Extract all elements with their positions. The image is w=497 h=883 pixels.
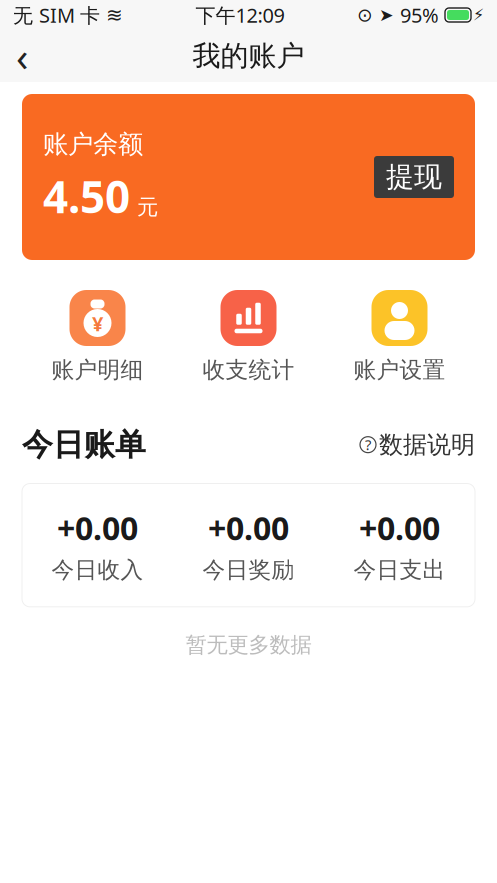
button[interactable]: 提现: [374, 156, 454, 198]
staticText: ≋: [106, 4, 123, 26]
staticText: 账户明细: [51, 356, 143, 384]
staticText: 暂无更多数据: [185, 632, 311, 658]
staticText: ⊙: [357, 4, 373, 26]
staticText: 账户余额: [43, 129, 143, 160]
staticText: 提现: [386, 160, 442, 194]
staticText: +0.00: [57, 506, 138, 549]
button[interactable]: ?: [360, 430, 475, 459]
button[interactable]: 账户设置: [324, 290, 475, 384]
button[interactable]: 返回: [0, 31, 44, 81]
button[interactable]: 收支统计: [173, 290, 324, 384]
staticText: 95%: [400, 2, 439, 28]
staticText: +0.00: [359, 506, 440, 549]
staticText: 今日支出: [353, 556, 445, 584]
staticText: 我的账户: [192, 39, 304, 73]
staticText: ⚡︎: [473, 6, 484, 24]
staticText: +0.00: [208, 506, 289, 549]
staticText: ¥: [92, 310, 103, 337]
staticText: 元: [137, 194, 158, 220]
staticText: 下午12:09: [195, 2, 284, 28]
button[interactable]: ¥: [22, 290, 173, 384]
staticText: ➤: [379, 5, 394, 25]
staticText: 无 SIM 卡: [13, 2, 100, 28]
staticText: ?: [365, 435, 371, 454]
staticText: 4.50: [43, 167, 130, 225]
staticText: 数据说明: [379, 430, 475, 459]
staticText: 账户设置: [353, 356, 445, 384]
staticText: 今日奖励: [202, 556, 294, 584]
staticText: 今日账单: [22, 426, 146, 463]
staticText: 今日收入: [51, 556, 143, 584]
staticText: ‹: [16, 29, 28, 82]
staticText: 收支统计: [202, 356, 294, 384]
